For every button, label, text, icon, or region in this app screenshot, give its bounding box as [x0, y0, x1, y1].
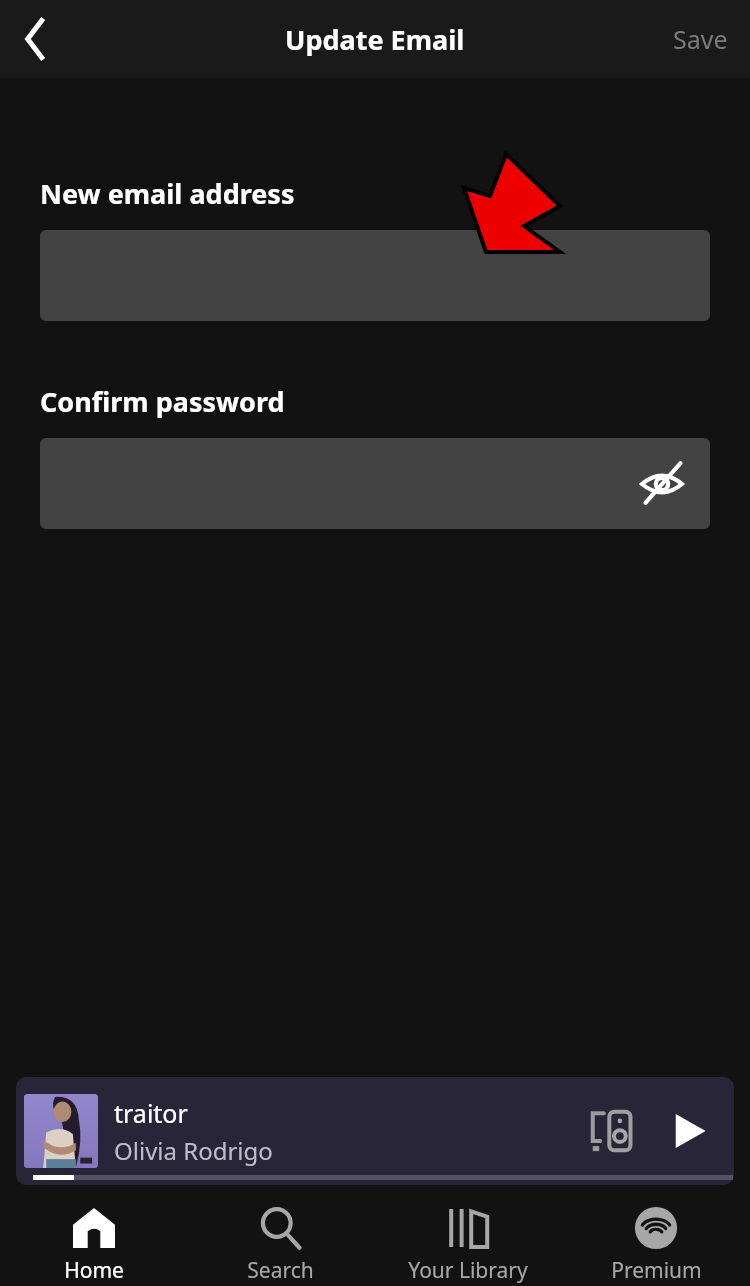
staticText: Update Email — [285, 21, 465, 58]
button[interactable]: Home — [0, 1197, 187, 1286]
button[interactable]: Show password — [634, 456, 690, 512]
staticText: Your Library — [408, 1256, 528, 1285]
button[interactable] — [40, 230, 710, 321]
staticText: New email address — [40, 175, 295, 212]
staticText: Search — [247, 1256, 314, 1285]
button[interactable]: traitor — [16, 1077, 734, 1185]
staticText: Save — [673, 22, 728, 56]
button[interactable]: Connect to a device — [584, 1102, 642, 1160]
button[interactable]: Save — [673, 22, 728, 56]
button[interactable]: Back — [8, 11, 64, 67]
button[interactable]: Your Library — [374, 1197, 562, 1286]
staticText: traitor — [114, 1096, 188, 1130]
staticText: Olivia Rodrigo — [114, 1134, 273, 1167]
button[interactable]: Premium — [562, 1197, 750, 1286]
button[interactable]: Show password — [40, 438, 710, 529]
staticText: Home — [64, 1256, 124, 1285]
staticText: Premium — [611, 1256, 702, 1285]
button[interactable]: Play — [664, 1105, 716, 1157]
staticText: Confirm password — [40, 383, 285, 420]
button[interactable]: Search — [187, 1197, 374, 1286]
